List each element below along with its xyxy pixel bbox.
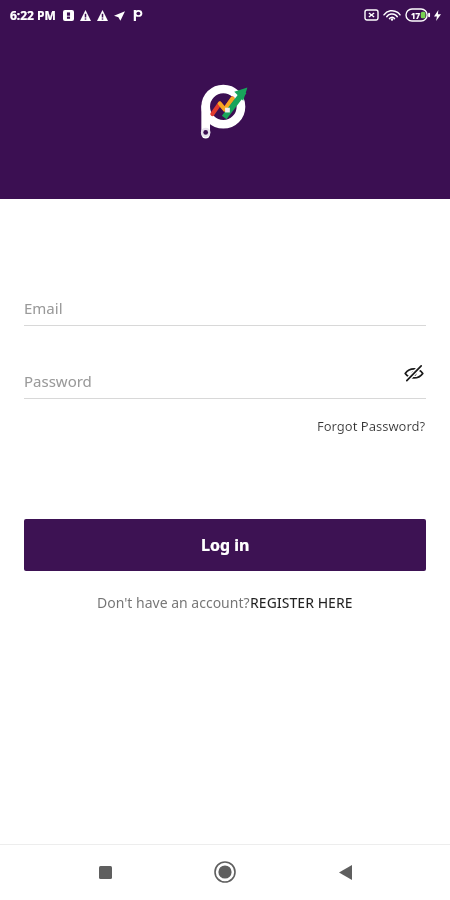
button[interactable]: Log in [24,519,426,571]
staticText: Don't have an account? [97,593,250,612]
staticText: Forgot Password? [317,417,426,435]
button[interactable]: Email [24,295,426,326]
staticText: Email [24,298,63,318]
button[interactable]: Recent apps [83,850,127,894]
staticText: REGISTER HERE [250,593,353,612]
staticText: Log in [201,534,250,556]
staticText: Password [24,371,92,391]
staticText: 6:22 PM [10,7,56,23]
button[interactable]: REGISTER HERE [250,593,353,612]
button[interactable]: Show password [402,361,426,385]
button[interactable]: Home [203,850,247,894]
button[interactable]: Forgot Password? [317,415,426,437]
button[interactable]: Back [323,850,367,894]
staticText: 17 [411,10,421,21]
button[interactable]: Password [24,368,426,399]
